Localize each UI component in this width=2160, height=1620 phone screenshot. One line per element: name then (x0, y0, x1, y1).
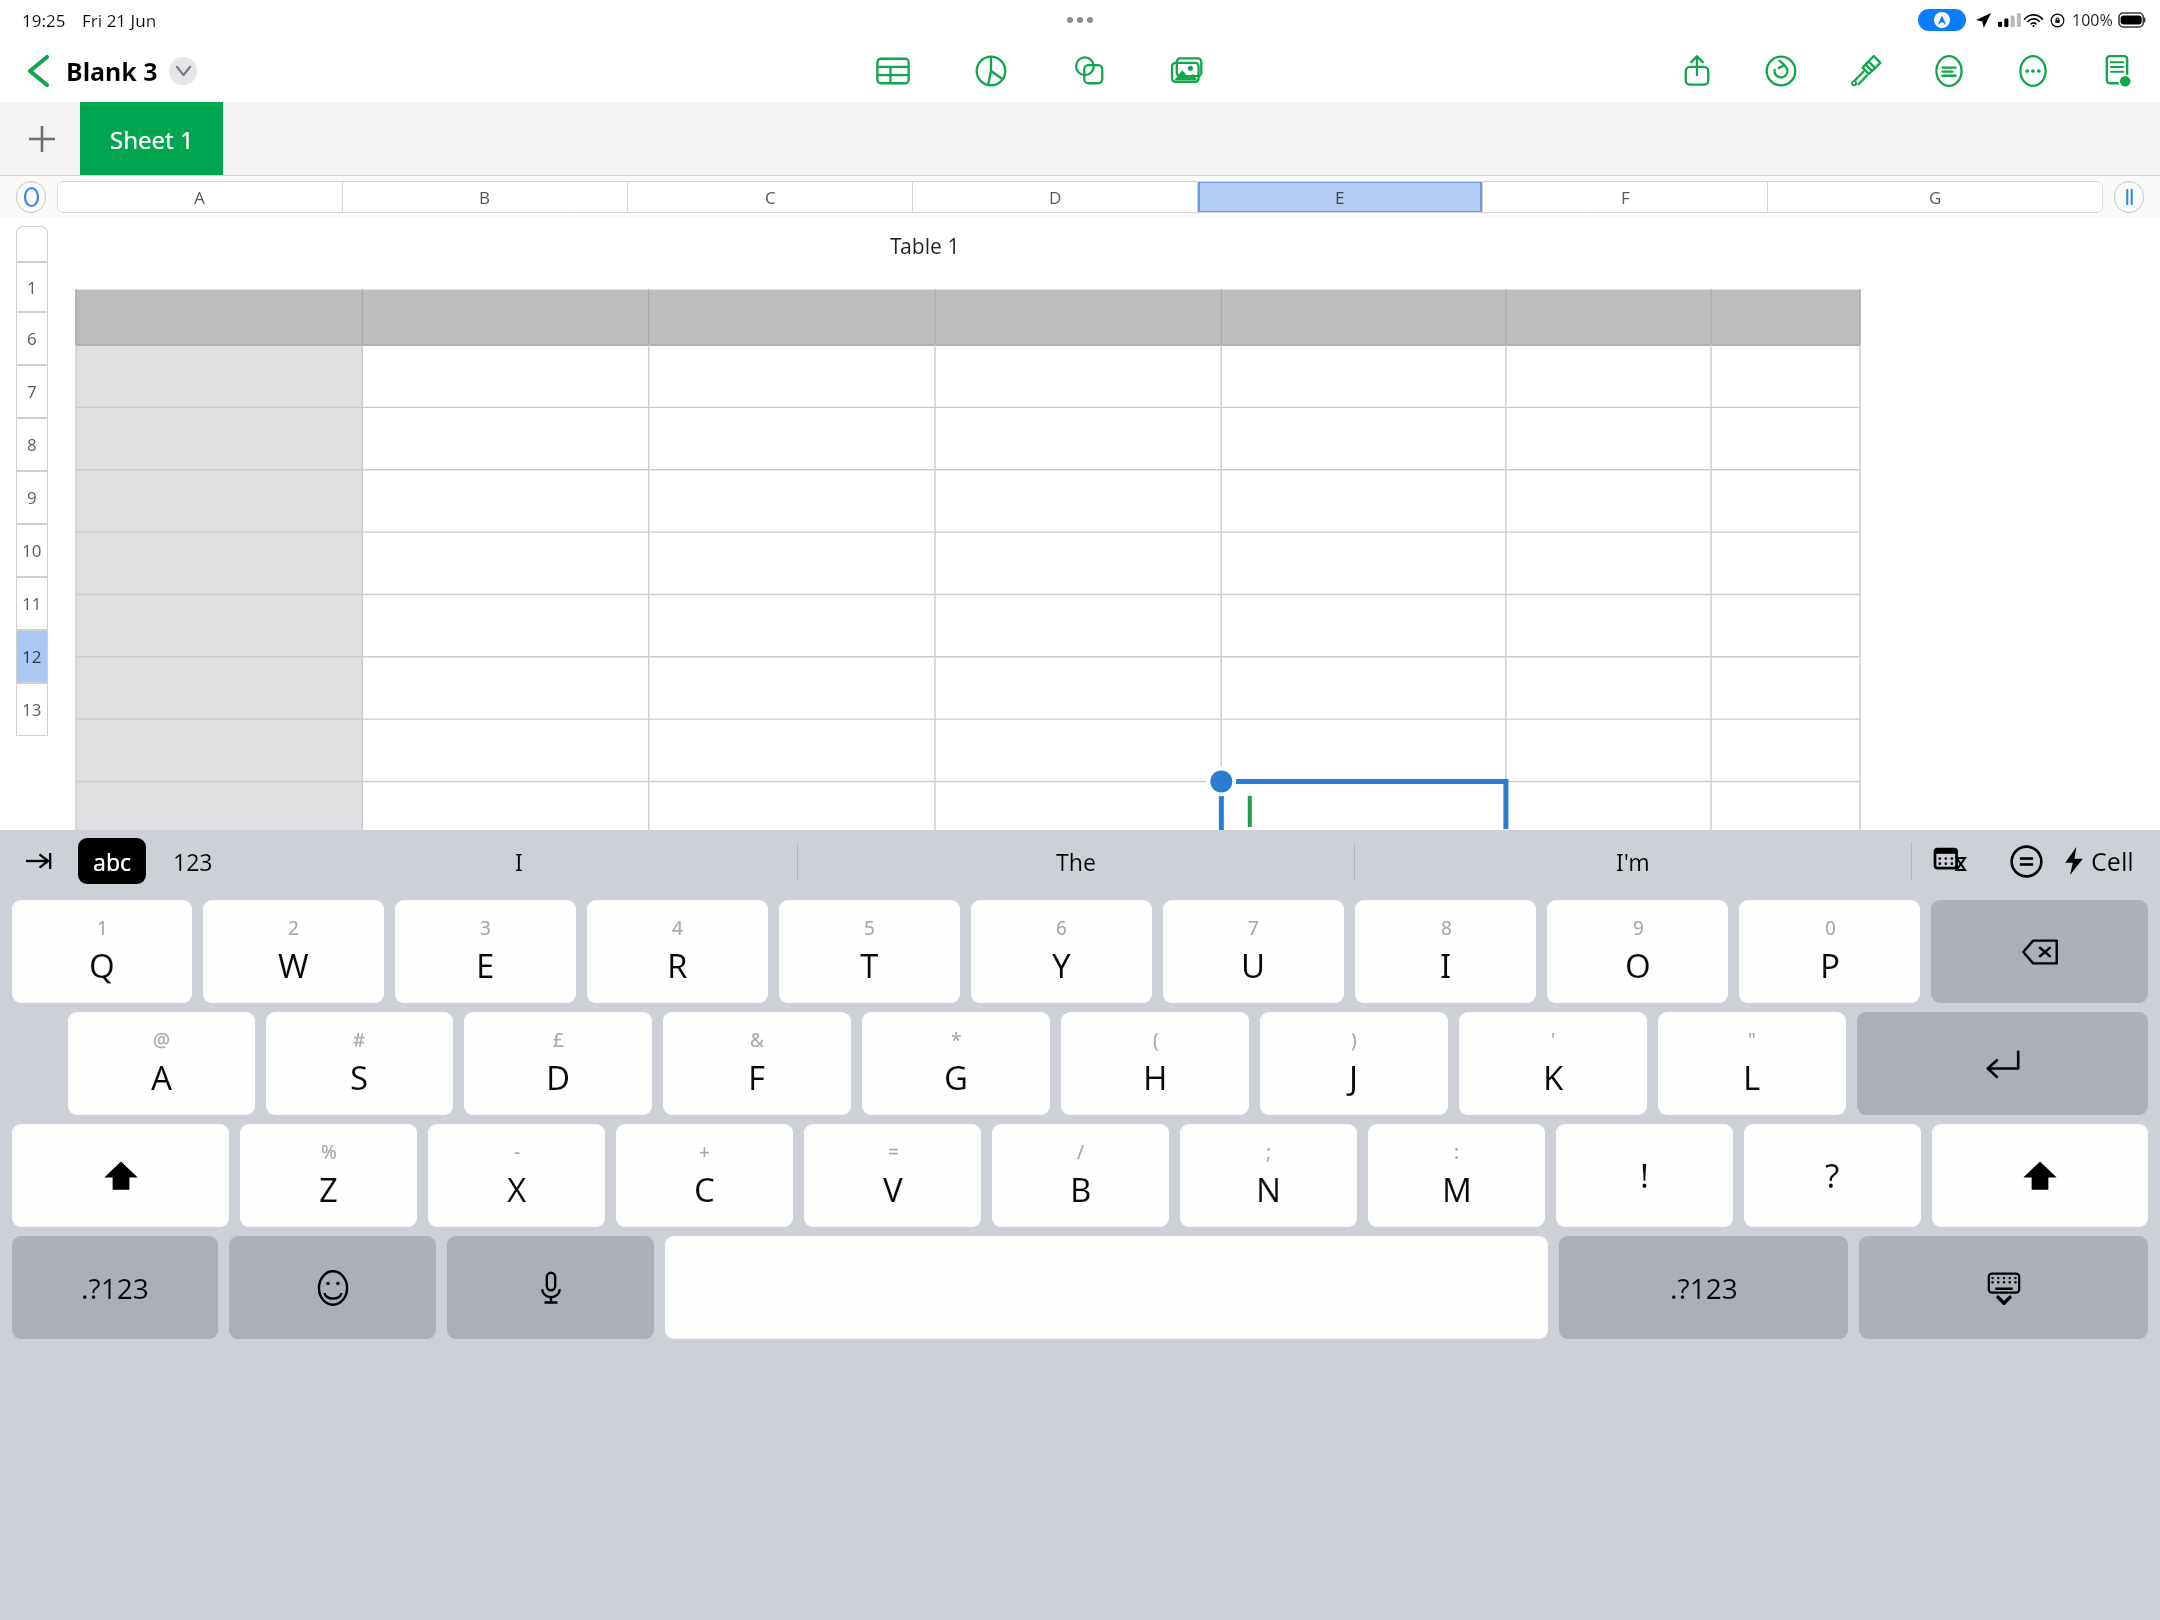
button[interactable]: 5 (779, 900, 960, 1003)
button[interactable]: @ (68, 1012, 255, 1115)
button[interactable]: Hide keyboard (1859, 1236, 2148, 1339)
button[interactable]: .?123 (1559, 1236, 1848, 1339)
staticText: M (1442, 1167, 1472, 1212)
staticText: K (1543, 1055, 1564, 1100)
button[interactable]: Sheet 1 (80, 102, 223, 176)
button[interactable]: 13 (16, 683, 48, 736)
button[interactable]: Pause (2114, 181, 2144, 213)
staticText: Cell (2091, 844, 2134, 878)
button[interactable]: Add sheet (20, 117, 64, 161)
button[interactable]: Tab (0, 830, 78, 892)
button[interactable]: abc (78, 838, 146, 884)
button[interactable]: 1 (12, 900, 192, 1003)
button[interactable]: 8 (16, 418, 48, 471)
button[interactable]: ; (1180, 1124, 1357, 1227)
button[interactable]: ' (1459, 1012, 1647, 1115)
button[interactable]: Insert chart (968, 48, 1014, 94)
button[interactable]: ? (1744, 1124, 1921, 1227)
button[interactable]: 11 (16, 577, 48, 630)
button[interactable]: Shift (12, 1124, 229, 1227)
button[interactable]: ( (1061, 1012, 1249, 1115)
staticText: Sheet 1 (110, 123, 194, 156)
button[interactable]: Formula (1988, 830, 2064, 892)
button[interactable]: Insert table (870, 48, 916, 94)
button[interactable]: A (57, 181, 342, 213)
button[interactable]: & (663, 1012, 851, 1115)
button[interactable]: Insert shape (1066, 48, 1112, 94)
button[interactable]: Select all (16, 181, 46, 213)
staticText: 6 (1056, 915, 1067, 941)
button[interactable]: 3 (395, 900, 576, 1003)
button[interactable]: * (862, 1012, 1050, 1115)
button[interactable]: Undo (1758, 48, 1804, 94)
button[interactable]: : (1368, 1124, 1545, 1227)
button[interactable]: 9 (1547, 900, 1728, 1003)
button[interactable]: 8 (1355, 900, 1536, 1003)
button[interactable]: / (992, 1124, 1169, 1227)
staticText: 1 (27, 276, 37, 299)
button[interactable]: I (240, 830, 797, 892)
button[interactable]: 10 (16, 524, 48, 577)
button[interactable]: The (798, 830, 1354, 892)
button[interactable]: Return (1857, 1012, 2148, 1115)
button[interactable]: 6 (16, 312, 48, 365)
staticText: The (1056, 846, 1096, 877)
button[interactable]: Format (1926, 48, 1972, 94)
button[interactable]: % (240, 1124, 417, 1227)
staticText: 4 (672, 915, 683, 941)
button[interactable]: 4 (587, 900, 768, 1003)
button[interactable]: Cell (2064, 844, 2134, 878)
button[interactable]: 0 (1739, 900, 1920, 1003)
button[interactable]: £ (464, 1012, 652, 1115)
button[interactable]: E (1198, 181, 1482, 213)
button[interactable]: .?123 (12, 1236, 218, 1339)
button[interactable]: B (343, 181, 627, 213)
button[interactable]: 1 (16, 262, 48, 312)
staticText: T (860, 943, 879, 988)
button[interactable]: + (616, 1124, 793, 1227)
staticText: ? (1825, 1153, 1840, 1198)
button[interactable]: 9 (16, 471, 48, 524)
staticText: G (944, 1055, 969, 1100)
staticText: Fri 21 Jun (82, 9, 157, 32)
button[interactable]: Backspace (1931, 900, 2148, 1003)
button[interactable]: ! (1556, 1124, 1733, 1227)
staticText: ( (1153, 1027, 1159, 1053)
staticText: 6 (27, 327, 37, 350)
button[interactable]: Format brush (1842, 48, 1888, 94)
button[interactable]: More (2010, 48, 2056, 94)
button[interactable]: F (1483, 181, 1767, 213)
staticText: B (479, 186, 491, 209)
staticText: 123 (173, 846, 213, 877)
button[interactable]: - (428, 1124, 605, 1227)
button[interactable]: 2 (203, 900, 384, 1003)
button[interactable]: 7 (1163, 900, 1344, 1003)
button[interactable]: G (1768, 181, 2103, 213)
button[interactable]: ) (1260, 1012, 1448, 1115)
staticText: 2 (288, 915, 299, 941)
button[interactable]: Blank 3 (66, 54, 197, 88)
staticText: 9 (1633, 915, 1644, 941)
button[interactable]: Dictate (447, 1236, 654, 1339)
button[interactable]: Document options (2094, 48, 2140, 94)
button[interactable]: # (266, 1012, 453, 1115)
staticText: Blank 3 (66, 54, 158, 88)
button[interactable]: = (804, 1124, 981, 1227)
button[interactable]: Share (1674, 48, 1720, 94)
staticText: * (951, 1027, 962, 1053)
button[interactable]: Shift (1932, 1124, 2148, 1227)
staticText: ! (1640, 1153, 1649, 1198)
button[interactable]: 7 (16, 365, 48, 418)
button[interactable]: I'm (1355, 830, 1911, 892)
button[interactable]: " (1658, 1012, 1846, 1115)
button[interactable]: 123 (146, 830, 240, 892)
button[interactable]: D (913, 181, 1197, 213)
button[interactable]: 12 (16, 630, 48, 683)
button[interactable]: C (628, 181, 912, 213)
button[interactable]: 6 (971, 900, 1152, 1003)
button[interactable]: Date and time (1912, 830, 1988, 892)
button[interactable]: Emoji (229, 1236, 436, 1339)
button[interactable]: Back (16, 49, 60, 93)
button[interactable]: Insert media (1164, 48, 1210, 94)
